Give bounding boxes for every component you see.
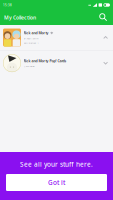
staticText: Got it: [48, 178, 65, 187]
staticText: Rick and Morty: [23, 31, 48, 35]
button[interactable]: Got it: [6, 174, 107, 191]
staticText: 1,410 cards: [23, 65, 34, 68]
staticText: My Collection: [4, 14, 36, 21]
button[interactable]: Rick and Morty: [0, 25, 113, 50]
staticText: See all your stuff here.: [20, 160, 93, 169]
staticText: Rick and Morty Pop! Cards: [23, 58, 66, 63]
staticText: 15:38: [3, 3, 12, 7]
staticText: by Adult Swim: [23, 37, 38, 40]
button[interactable]: Search: [97, 11, 110, 24]
staticText: Sets Started: 1: [23, 41, 38, 44]
button[interactable]: Rick and Morty Pop! Cards: [0, 51, 113, 76]
